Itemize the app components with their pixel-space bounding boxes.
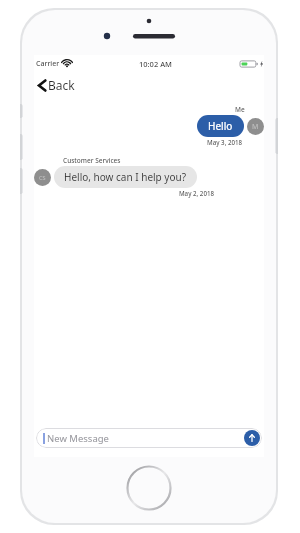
button[interactable]: New Message bbox=[36, 428, 262, 448]
staticText: CS bbox=[39, 174, 46, 181]
staticText: May 3, 2018 bbox=[207, 138, 243, 146]
staticText: Hello bbox=[208, 119, 233, 133]
button[interactable]: Send bbox=[244, 430, 260, 446]
staticText: Customer Services bbox=[63, 156, 121, 165]
staticText: M bbox=[252, 122, 259, 132]
button[interactable]: Hello bbox=[197, 115, 264, 137]
staticText: May 2, 2018 bbox=[178, 189, 214, 197]
staticText: New Message bbox=[47, 432, 109, 445]
staticText: Back bbox=[48, 77, 75, 93]
staticText: Carrier bbox=[36, 59, 60, 69]
button[interactable]: Back bbox=[35, 74, 78, 96]
button[interactable]: CS bbox=[34, 166, 197, 188]
button[interactable]: Home bbox=[126, 465, 172, 511]
staticText: Hello, how can I help you? bbox=[64, 170, 187, 184]
staticText: 10:02 AM bbox=[139, 59, 172, 69]
staticText: Me bbox=[235, 105, 245, 114]
